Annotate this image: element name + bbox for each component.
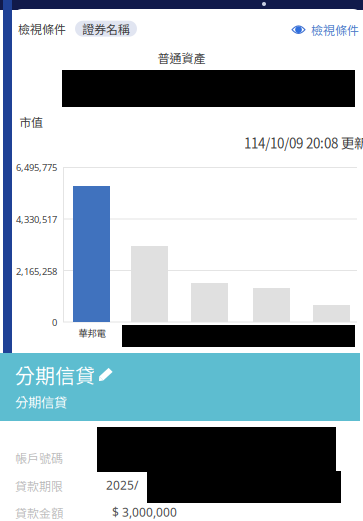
staticText: 2,165,258	[16, 265, 57, 278]
staticText: 市值	[19, 113, 43, 130]
staticText: 114/10/09 20:08 更新	[244, 133, 363, 152]
staticText: 貸款金額	[15, 504, 63, 521]
staticText: 分期信貸	[15, 360, 95, 389]
staticText: 4,330,517	[16, 213, 57, 226]
staticText: $ 3,000,000	[112, 504, 177, 520]
staticText: 貸款期限	[15, 477, 63, 494]
staticText: 分期信貸	[15, 392, 67, 411]
button[interactable]: 檢視條件	[291, 21, 359, 38]
staticText: 證券名稱	[82, 20, 130, 37]
staticText: 華邦電	[78, 326, 105, 339]
staticText: 0	[52, 316, 57, 329]
staticText: 帳戶號碼	[15, 449, 63, 466]
staticText: 檢視條件	[311, 21, 359, 38]
button[interactable]: 檢視條件	[18, 20, 137, 37]
staticText: 6,495,775	[16, 161, 57, 174]
staticText: 2025/	[106, 477, 138, 493]
staticText: 檢視條件	[18, 20, 66, 37]
staticText: 普通資產	[157, 49, 205, 66]
